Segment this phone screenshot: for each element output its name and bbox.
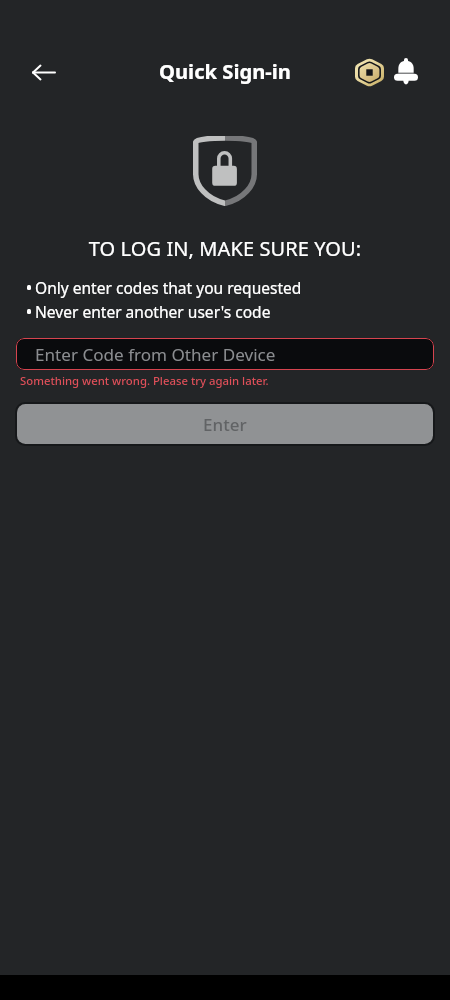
staticText: Something went wrong. Please try again l… [20, 373, 269, 388]
button[interactable]: Enter [17, 404, 433, 444]
staticText: TO LOG IN, MAKE SURE YOU: [0, 235, 450, 262]
staticText: Never enter another user's code [35, 301, 271, 322]
button[interactable]: Enter Code from Other Device [16, 338, 434, 370]
button[interactable]: Back [20, 48, 68, 96]
staticText: Enter Code from Other Device [35, 343, 276, 366]
staticText: Quick Sign-in [159, 57, 291, 85]
staticText: Enter [203, 413, 247, 436]
button[interactable]: Notifications [391, 56, 421, 86]
button[interactable]: Robux [352, 55, 386, 89]
staticText: Only enter codes that you requested [35, 277, 302, 298]
